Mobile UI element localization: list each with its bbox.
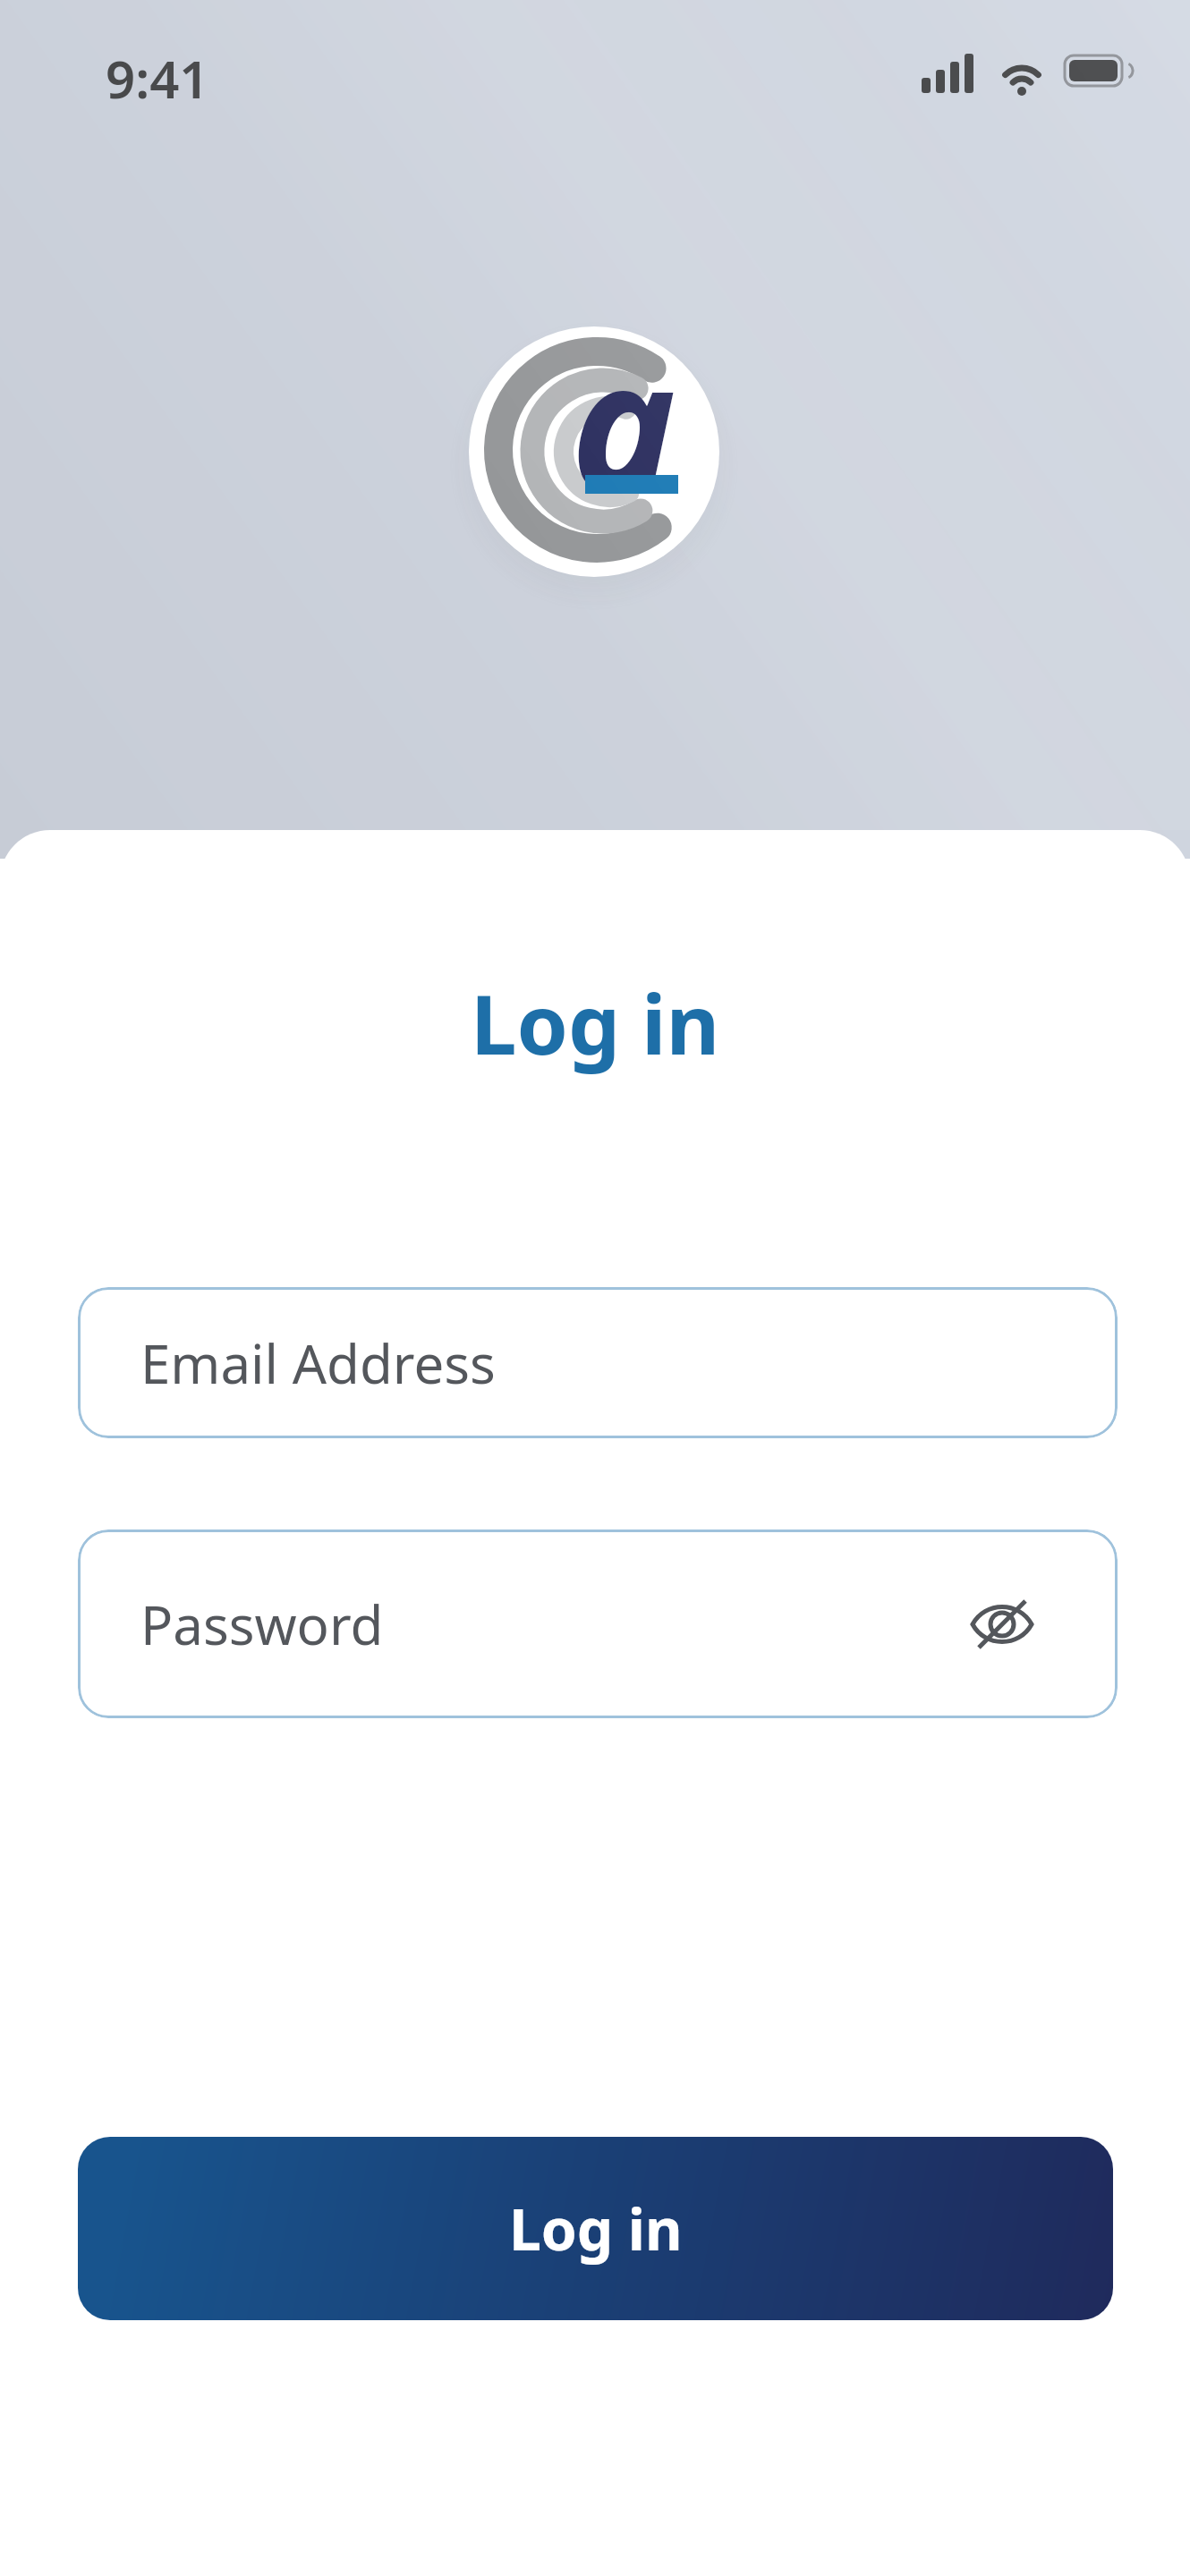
button[interactable]: Log in (78, 2137, 1113, 2320)
staticText: 9:41 (106, 43, 209, 114)
button[interactable]: Password (78, 1529, 1118, 1718)
button[interactable]: Email Address (78, 1287, 1118, 1438)
staticText: Email Address (140, 1326, 496, 1400)
staticText: Password (140, 1588, 384, 1661)
staticText: a (571, 300, 676, 541)
staticText: Log in (471, 967, 720, 1079)
staticText: Log in (509, 2190, 683, 2267)
